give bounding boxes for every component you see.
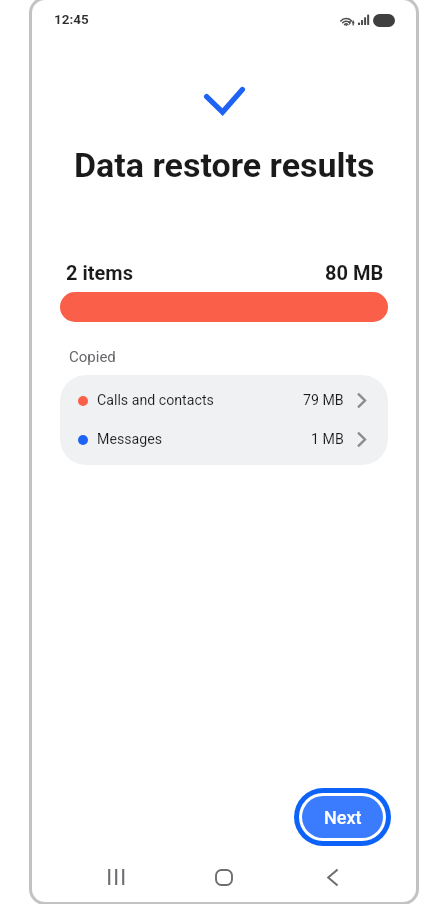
staticText: 2 items bbox=[66, 261, 133, 284]
staticText: Next bbox=[324, 807, 362, 828]
button[interactable]: Home bbox=[170, 855, 278, 899]
staticText: 1 MB bbox=[311, 431, 344, 448]
button[interactable]: Calls and contacts bbox=[60, 381, 388, 420]
button[interactable]: Recent apps bbox=[62, 855, 170, 899]
staticText: Copied bbox=[69, 348, 116, 366]
button[interactable]: Messages bbox=[60, 420, 388, 459]
staticText: Messages bbox=[97, 431, 163, 448]
staticText: 12:45 bbox=[54, 11, 89, 27]
staticText: Calls and contacts bbox=[97, 392, 214, 409]
button[interactable]: Back bbox=[278, 855, 386, 899]
staticText: 80 MB bbox=[325, 261, 384, 284]
button[interactable]: Next bbox=[302, 796, 383, 838]
staticText: 79 MB bbox=[303, 392, 344, 409]
staticText: Data restore results bbox=[74, 145, 375, 185]
